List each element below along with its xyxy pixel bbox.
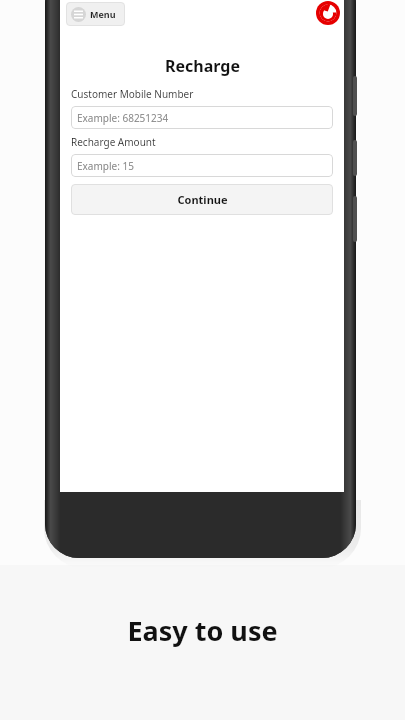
staticText: Menu [90, 8, 116, 20]
staticText: Customer Mobile Number [71, 87, 194, 101]
button[interactable]: Menu [66, 2, 125, 26]
button[interactable]: Vodafone [316, 1, 340, 25]
button[interactable]: Example: 15 [71, 154, 333, 177]
staticText: Recharge [165, 55, 240, 77]
staticText: Continue [177, 192, 228, 207]
button[interactable]: Example: 68251234 [71, 106, 333, 129]
staticText: Recharge Amount [71, 135, 156, 149]
staticText: Example: 15 [77, 159, 134, 173]
staticText: Example: 68251234 [77, 111, 169, 125]
staticText: Easy to use [127, 612, 278, 649]
button[interactable]: Continue [71, 184, 333, 215]
